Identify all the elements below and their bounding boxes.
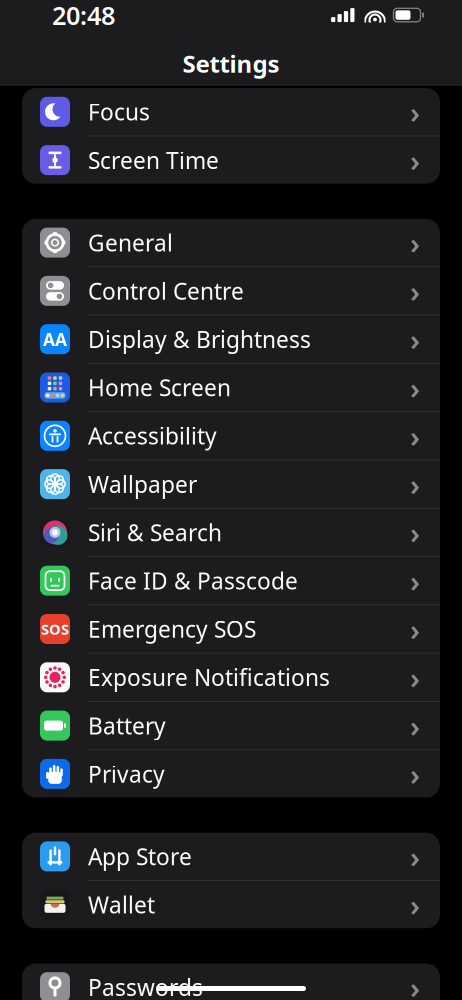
button[interactable]: Home Screen [22, 364, 440, 412]
staticText: Passwords [88, 972, 203, 1000]
staticText: › [410, 837, 420, 876]
staticText: › [410, 609, 420, 648]
staticText: › [410, 885, 420, 924]
staticText: Screen Time [88, 145, 219, 175]
button[interactable]: Focus [22, 88, 440, 136]
staticText: Control Centre [88, 276, 244, 306]
button[interactable]: Wallpaper [22, 460, 440, 509]
staticText: 20:48 [52, 0, 115, 32]
button[interactable]: Wallet [22, 881, 440, 928]
staticText: Battery [88, 710, 166, 741]
staticText: App Store [88, 841, 192, 871]
staticText: › [410, 320, 420, 359]
staticText: › [410, 141, 420, 180]
staticText: Home Screen [88, 372, 231, 402]
button[interactable]: SOS [22, 605, 440, 653]
staticText: Wallpaper [88, 469, 197, 499]
staticText: › [410, 92, 420, 131]
staticText: Siri & Search [88, 517, 222, 547]
button[interactable]: Screen Time [22, 136, 440, 184]
staticText: AA [43, 328, 67, 351]
button[interactable]: Passwords [22, 963, 440, 1000]
staticText: › [410, 368, 420, 407]
staticText: › [410, 223, 420, 262]
staticText: › [410, 271, 420, 310]
staticText: › [410, 416, 420, 455]
staticText: Settings [182, 48, 279, 79]
staticText: Display & Brightness [88, 324, 311, 354]
staticText: Emergency SOS [88, 614, 256, 644]
button[interactable]: Exposure Notifications [22, 653, 440, 702]
staticText: › [410, 513, 420, 552]
staticText: Exposure Notifications [88, 662, 330, 692]
button[interactable]: Control Centre [22, 267, 440, 315]
button[interactable]: General [22, 219, 440, 267]
staticText: Accessibility [88, 421, 217, 451]
button[interactable]: AA [22, 315, 440, 364]
staticText: › [410, 658, 420, 697]
staticText: › [410, 754, 420, 793]
button[interactable]: Siri & Search [22, 509, 440, 557]
button[interactable]: Battery [22, 702, 440, 750]
staticText: Focus [88, 97, 150, 127]
staticText: › [410, 968, 420, 1000]
button[interactable]: Accessibility [22, 412, 440, 460]
staticText: Privacy [88, 759, 165, 789]
staticText: Wallet [88, 890, 155, 920]
staticText: General [88, 227, 173, 258]
staticText: › [410, 561, 420, 600]
button[interactable]: Privacy [22, 750, 440, 798]
staticText: › [410, 706, 420, 745]
button[interactable]: Face ID & Passcode [22, 557, 440, 605]
staticText: › [410, 465, 420, 504]
staticText: SOS [41, 619, 69, 639]
staticText: Face ID & Passcode [88, 566, 298, 596]
button[interactable]: App Store [22, 833, 440, 881]
